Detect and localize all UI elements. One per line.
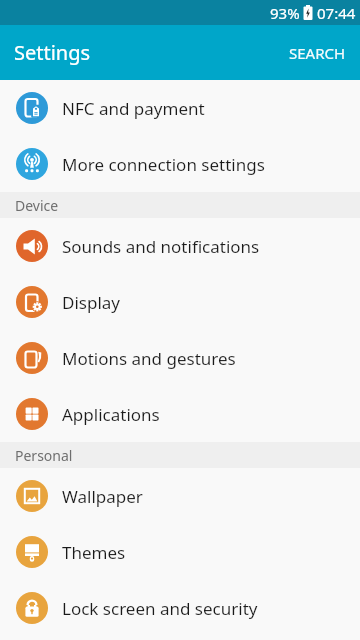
button[interactable]: More connection settings	[0, 136, 360, 192]
staticText: Display	[62, 291, 120, 314]
staticText: Personal	[15, 446, 73, 465]
staticText: SEARCH	[289, 43, 346, 63]
staticText: NFC and payment	[62, 97, 205, 120]
button[interactable]: Sounds and notifications	[0, 218, 360, 274]
button[interactable]: Applications	[0, 386, 360, 442]
staticText: Sounds and notifications	[62, 235, 260, 258]
button[interactable]: Lock screen and security	[0, 580, 360, 636]
staticText: Themes	[62, 541, 126, 564]
button[interactable]: SEARCH	[275, 27, 360, 79]
staticText: Wallpaper	[62, 485, 143, 508]
button[interactable]: Motions and gestures	[0, 330, 360, 386]
staticText: Settings	[14, 39, 91, 66]
staticText: 93%	[270, 3, 300, 23]
staticText: 07:44	[317, 3, 356, 23]
staticText: Lock screen and security	[62, 597, 258, 620]
staticText: Motions and gestures	[62, 347, 236, 370]
button[interactable]: Display	[0, 274, 360, 330]
button[interactable]: Wallpaper	[0, 468, 360, 524]
button[interactable]: NFC and payment	[0, 80, 360, 136]
staticText: More connection settings	[62, 153, 265, 176]
button[interactable]: Themes	[0, 524, 360, 580]
staticText: Device	[15, 196, 59, 215]
staticText: Applications	[62, 403, 160, 426]
